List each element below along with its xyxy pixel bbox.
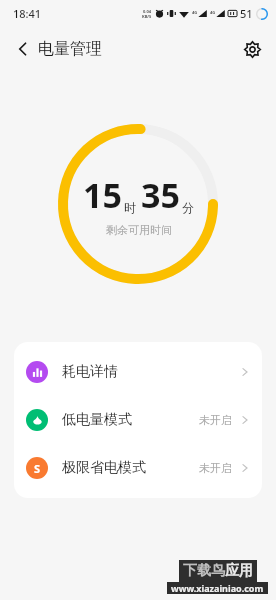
staticText: 未开启 (199, 413, 232, 427)
staticText: 4G (192, 10, 198, 15)
staticText: KB/S (142, 14, 152, 19)
staticText: 下载 (183, 562, 211, 580)
staticText: 鸟 (211, 562, 225, 580)
staticText: 应用 (225, 562, 253, 580)
staticText: 未开启 (199, 461, 232, 475)
staticText: 低电量模式 (62, 411, 132, 429)
staticText: 时 (124, 200, 136, 215)
staticText: 18:41 (13, 6, 42, 21)
staticText: 4G (210, 10, 216, 15)
button[interactable]: Back (5, 31, 41, 67)
staticText: www.xiazainiao.com (171, 582, 264, 594)
staticText: 51 (240, 6, 253, 21)
button[interactable]: 耗电详情 (14, 348, 262, 396)
staticText: S (34, 461, 41, 476)
button[interactable]: S (14, 444, 262, 492)
staticText: 0.04 (143, 9, 151, 14)
button[interactable]: 低电量模式 (14, 396, 262, 444)
staticText: 极限省电模式 (62, 459, 146, 477)
staticText: 35 (141, 172, 180, 218)
staticText: 耗电详情 (62, 363, 118, 381)
staticText: 15 (83, 172, 122, 218)
staticText: 分 (182, 200, 194, 215)
staticText: 剩余可用时间 (106, 223, 172, 237)
button[interactable]: Settings (235, 32, 269, 66)
staticText: 电量管理 (38, 39, 102, 59)
